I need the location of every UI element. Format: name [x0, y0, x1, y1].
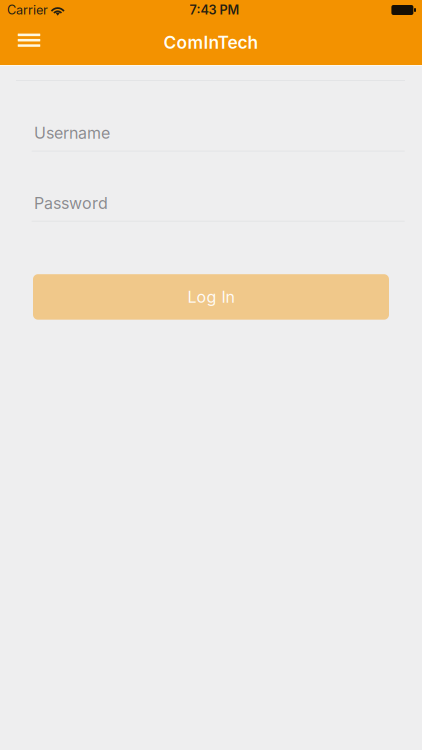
button[interactable]: Log In	[33, 274, 389, 320]
staticText: ComInTech	[163, 32, 258, 53]
staticText: Password	[34, 193, 108, 213]
button[interactable]: Menu	[9, 20, 49, 65]
staticText: Username	[34, 123, 110, 143]
button[interactable]: Password	[32, 195, 405, 222]
staticText: Carrier	[7, 2, 48, 18]
button[interactable]: Username	[32, 125, 405, 152]
staticText: Log In	[187, 287, 234, 307]
staticText: 7:43 PM	[189, 2, 239, 18]
